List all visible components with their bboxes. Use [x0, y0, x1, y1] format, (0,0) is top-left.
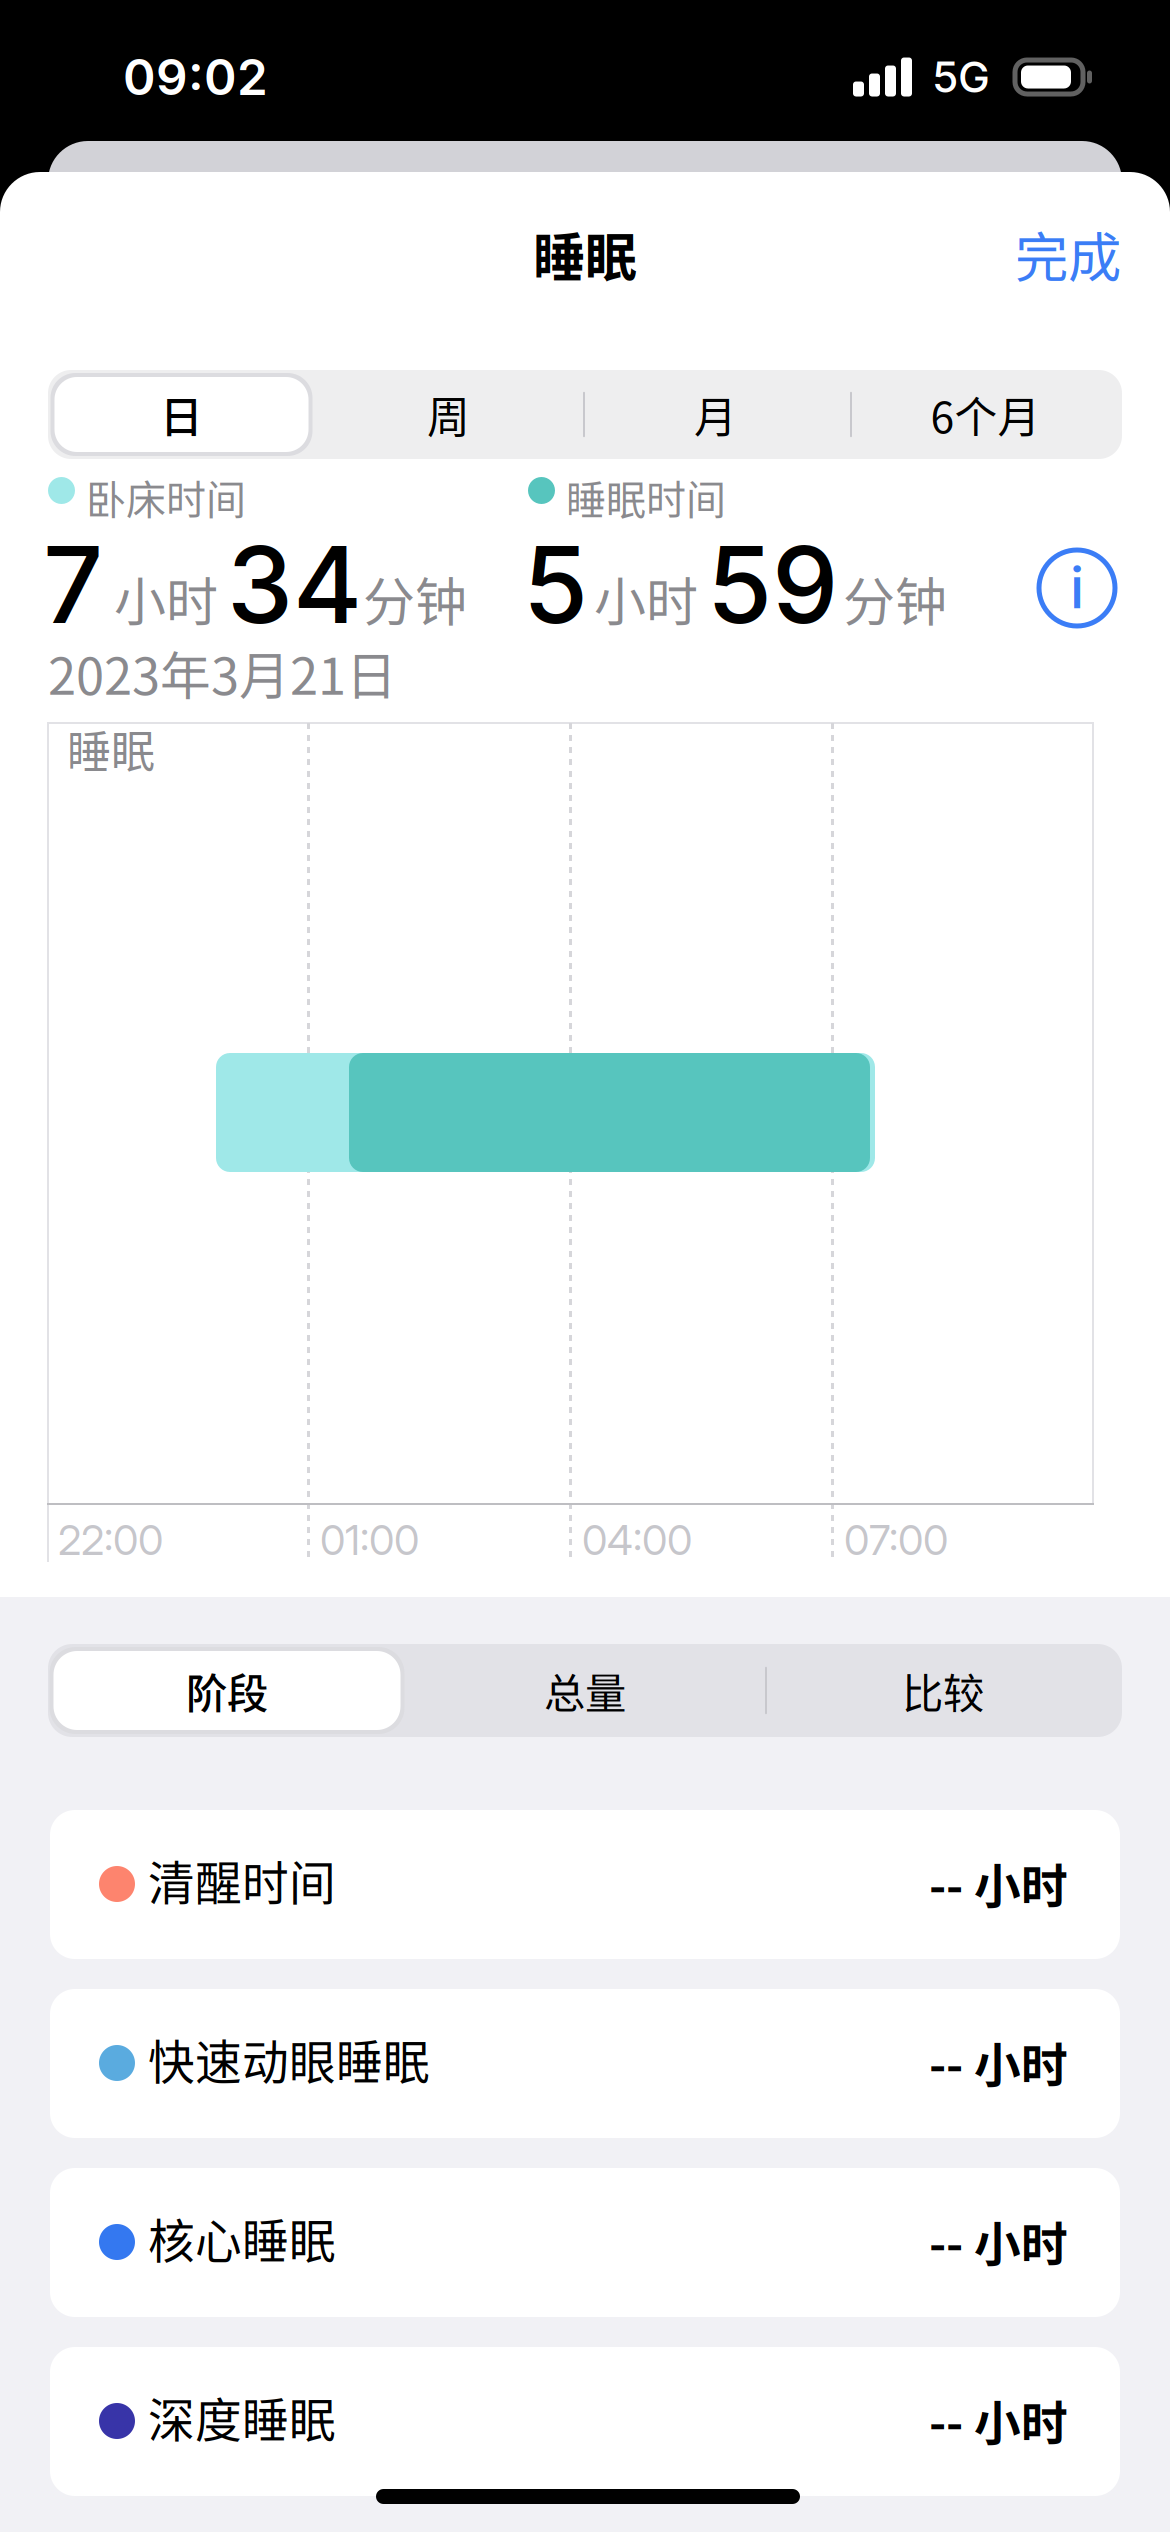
- staticText: -- 小时: [929, 2028, 1068, 2096]
- staticText: 分钟: [843, 561, 947, 636]
- button[interactable]: 周: [315, 370, 582, 459]
- staticText: 分钟: [363, 561, 467, 636]
- staticText: 22:00: [58, 1515, 163, 1565]
- staticText: 卧床时间: [86, 468, 246, 526]
- button[interactable]: 日: [48, 370, 315, 459]
- staticText: 09:02: [123, 47, 268, 107]
- staticText: i: [1070, 554, 1084, 622]
- staticText: 比较: [902, 1661, 984, 1720]
- button[interactable]: 阶段: [48, 1644, 406, 1737]
- button[interactable]: 深度睡眠: [50, 2347, 1120, 2496]
- staticText: 睡眠: [67, 717, 155, 781]
- staticText: 睡眠: [533, 216, 637, 292]
- staticText: 07:00: [844, 1515, 948, 1565]
- staticText: 核心睡眠: [148, 2204, 336, 2272]
- button[interactable]: 快速动眼睡眠: [50, 1989, 1120, 2138]
- button[interactable]: 核心睡眠: [50, 2168, 1120, 2317]
- staticText: 7: [43, 521, 103, 648]
- staticText: 日: [160, 384, 203, 445]
- staticText: 59: [707, 521, 838, 648]
- button[interactable]: 比较: [764, 1644, 1122, 1737]
- staticText: 2023年3月21日: [48, 636, 397, 709]
- button[interactable]: 月: [582, 370, 849, 459]
- staticText: 5G: [932, 51, 990, 103]
- staticText: 小时: [114, 561, 218, 636]
- staticText: 总量: [544, 1661, 626, 1720]
- staticText: 04:00: [582, 1515, 692, 1565]
- staticText: 小时: [594, 561, 698, 636]
- staticText: 5: [523, 521, 588, 648]
- button[interactable]: 完成: [985, 195, 1151, 313]
- button[interactable]: More info: [1032, 543, 1122, 633]
- staticText: 6个月: [930, 384, 1040, 445]
- staticText: 睡眠时间: [566, 468, 726, 526]
- button[interactable]: 6个月: [849, 370, 1122, 459]
- staticText: 34: [227, 521, 362, 648]
- staticText: 阶段: [186, 1661, 268, 1720]
- staticText: 完成: [1015, 215, 1121, 293]
- button[interactable]: 总量: [406, 1644, 764, 1737]
- staticText: 清醒时间: [148, 1846, 336, 1914]
- staticText: -- 小时: [929, 1849, 1068, 1917]
- staticText: 01:00: [320, 1515, 419, 1565]
- staticText: -- 小时: [929, 2207, 1068, 2275]
- staticText: 月: [694, 384, 737, 445]
- staticText: -- 小时: [929, 2386, 1068, 2454]
- button[interactable]: 清醒时间: [50, 1810, 1120, 1959]
- staticText: 周: [427, 384, 470, 445]
- staticText: 快速动眼睡眠: [148, 2025, 430, 2093]
- staticText: 深度睡眠: [148, 2383, 336, 2451]
